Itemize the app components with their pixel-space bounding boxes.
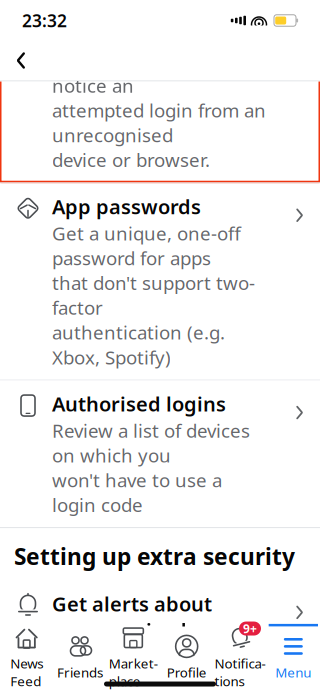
staticText: We'll ask for a code if we notice an att… xyxy=(52,48,266,172)
staticText: 23:32 xyxy=(22,9,67,32)
staticText: Authorised logins xyxy=(52,391,226,417)
staticText: Use two-factor authentication xyxy=(52,0,198,47)
button[interactable]: Use two-factor authentication xyxy=(0,0,320,182)
staticText: Review a list of devices on which you wo… xyxy=(52,418,250,517)
button[interactable]: Authorised logins xyxy=(0,381,320,527)
staticText: Friends xyxy=(57,663,103,681)
button[interactable]: Profile xyxy=(160,626,213,678)
staticText: News Feed xyxy=(10,654,43,690)
button[interactable]: Menu xyxy=(267,626,320,678)
staticText: 9+ xyxy=(243,621,257,636)
staticText: Notifications xyxy=(214,654,265,690)
staticText: Profile xyxy=(167,663,207,681)
staticText: We'll let you know if anyone logs in fro… xyxy=(52,671,261,693)
button[interactable]: Friends xyxy=(53,626,107,678)
button[interactable]: App passwords xyxy=(0,183,320,380)
staticText: Get alerts about unrecognised logins xyxy=(52,590,212,670)
staticText: Setting up extra security xyxy=(14,541,295,571)
staticText: Menu xyxy=(275,663,311,681)
staticText: Get a unique, one-off password for apps … xyxy=(52,221,255,369)
button[interactable]: Marketplace xyxy=(107,626,160,678)
staticText: App passwords xyxy=(52,193,201,220)
button[interactable]: News Feed xyxy=(0,626,53,678)
staticText: Marketplace xyxy=(109,654,158,690)
button[interactable]: 9+ xyxy=(213,626,267,678)
button[interactable]: Back xyxy=(0,42,58,78)
button[interactable]: Get alerts about unrecognised logins xyxy=(0,580,320,693)
